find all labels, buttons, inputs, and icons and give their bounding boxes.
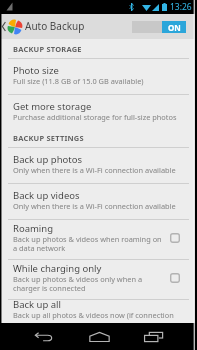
staticText: 13:26 bbox=[170, 1, 192, 13]
staticText: Photo size bbox=[13, 64, 59, 77]
button[interactable]: Navigate up bbox=[0, 14, 8, 39]
button[interactable]: Back up videos bbox=[0, 184, 197, 219]
staticText: Only when there is a Wi-Fi connection av… bbox=[13, 165, 176, 175]
button[interactable]: Photo size bbox=[0, 59, 197, 94]
button[interactable]: While charging only bbox=[0, 260, 197, 299]
staticText: Back up photos & videos only when a char… bbox=[13, 274, 164, 293]
staticText: BACKUP STORAGE bbox=[13, 44, 82, 54]
staticText: Auto Backup bbox=[25, 19, 85, 33]
staticText: ON bbox=[168, 22, 181, 33]
staticText: While charging only bbox=[13, 262, 102, 275]
staticText: Back up videos bbox=[13, 189, 80, 202]
button[interactable]: Home bbox=[74, 323, 124, 350]
staticText: Back up all photos & videos now (if conn… bbox=[13, 310, 189, 320]
button[interactable]: ON bbox=[132, 21, 186, 33]
staticText: BACKUP SETTINGS bbox=[13, 133, 84, 143]
staticText: Back up photos bbox=[13, 153, 82, 166]
staticText: Roaming bbox=[13, 222, 54, 235]
staticText: Purchase additional storage for full-siz… bbox=[13, 112, 177, 122]
button[interactable]: Recent apps bbox=[128, 323, 178, 350]
button[interactable]: Back up photos bbox=[0, 148, 197, 183]
staticText: Full size (11.8 GB of 15.0 GB available) bbox=[13, 76, 144, 86]
button[interactable]: Back bbox=[19, 323, 69, 350]
staticText: Only when there is a Wi-Fi connection av… bbox=[13, 201, 176, 211]
button[interactable]: Back up all bbox=[0, 300, 197, 323]
staticText: Get more storage bbox=[13, 100, 92, 113]
button[interactable]: Get more storage bbox=[0, 95, 197, 130]
staticText: Back up all bbox=[13, 298, 62, 311]
button[interactable]: Roaming bbox=[0, 220, 197, 259]
staticText: Back up photos & videos when roaming on … bbox=[13, 234, 164, 253]
